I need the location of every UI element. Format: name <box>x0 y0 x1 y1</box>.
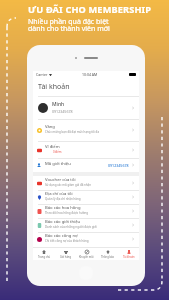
staticText: 10:04 AM <box>82 72 98 77</box>
staticText: Báo cáo công nợ <box>45 233 78 239</box>
staticText: Trang chủ <box>38 255 51 259</box>
button[interactable]: Báo cáo giới thiệu <box>33 218 139 232</box>
staticText: Sử dụng các mã giảm giá đã nhận <box>45 183 92 187</box>
button[interactable]: Địa chỉ của tôi <box>33 190 139 204</box>
staticText: Địa chỉ của tôi <box>45 191 73 197</box>
staticText: Chi tiết công nợ của khách hàng <box>45 239 89 243</box>
button[interactable]: Báo cáo hoa hồng <box>33 204 139 218</box>
staticText: ƯU ĐÃI CHO MEMBERSHIP <box>28 3 152 16</box>
staticText: Minh <box>52 101 65 108</box>
button[interactable]: Vàng <box>33 119 139 141</box>
staticText: Nhiều phần quà đặc biệt dành cho thành v… <box>28 17 110 33</box>
staticText: Giỏ hàng <box>60 255 72 259</box>
button[interactable]: Voucher của tôi <box>33 176 139 190</box>
staticText: Tài khoản <box>38 82 70 92</box>
staticText: Vàng <box>45 124 55 130</box>
button[interactable]: Mã giới thiệu <box>33 158 139 172</box>
staticText: Báo cáo hoa hồng <box>45 205 81 211</box>
button[interactable]: Tài khoản <box>118 248 139 260</box>
button[interactable]: Thông báo <box>97 248 118 260</box>
button[interactable]: Minh <box>33 96 139 119</box>
button[interactable]: Trang chủ <box>33 248 55 260</box>
staticText: Danh sách của những người được giới <box>45 225 97 229</box>
staticText: Chúc mừng bạn đã đạt mức hạng tối đa <box>45 130 100 134</box>
button[interactable]: Ví điểm <box>33 141 139 159</box>
staticText: 0912345678 <box>52 109 73 114</box>
staticText: Khuyến mãi <box>79 255 94 259</box>
staticText: Tài khoản <box>123 255 135 259</box>
button[interactable]: Báo cáo công nợ <box>33 232 139 246</box>
staticText: Mã giới thiệu <box>45 161 71 167</box>
staticText: 0điểm <box>53 150 62 154</box>
staticText: Báo cáo giới thiệu <box>45 219 81 225</box>
staticText: Thông báo <box>101 255 115 259</box>
button[interactable]: Khuyến mãi <box>76 248 97 260</box>
staticText: Theo dõi hoa hồng được hưởng <box>45 211 89 215</box>
staticText: 0912345678 <box>108 163 129 168</box>
staticText: Carrier <box>36 72 48 77</box>
button[interactable]: Giỏ hàng <box>55 248 76 260</box>
staticText: Voucher của tôi <box>45 177 76 183</box>
staticText: Quản lý địa chỉ nhận hàng <box>45 197 81 201</box>
staticText: Ví điểm <box>45 144 60 150</box>
